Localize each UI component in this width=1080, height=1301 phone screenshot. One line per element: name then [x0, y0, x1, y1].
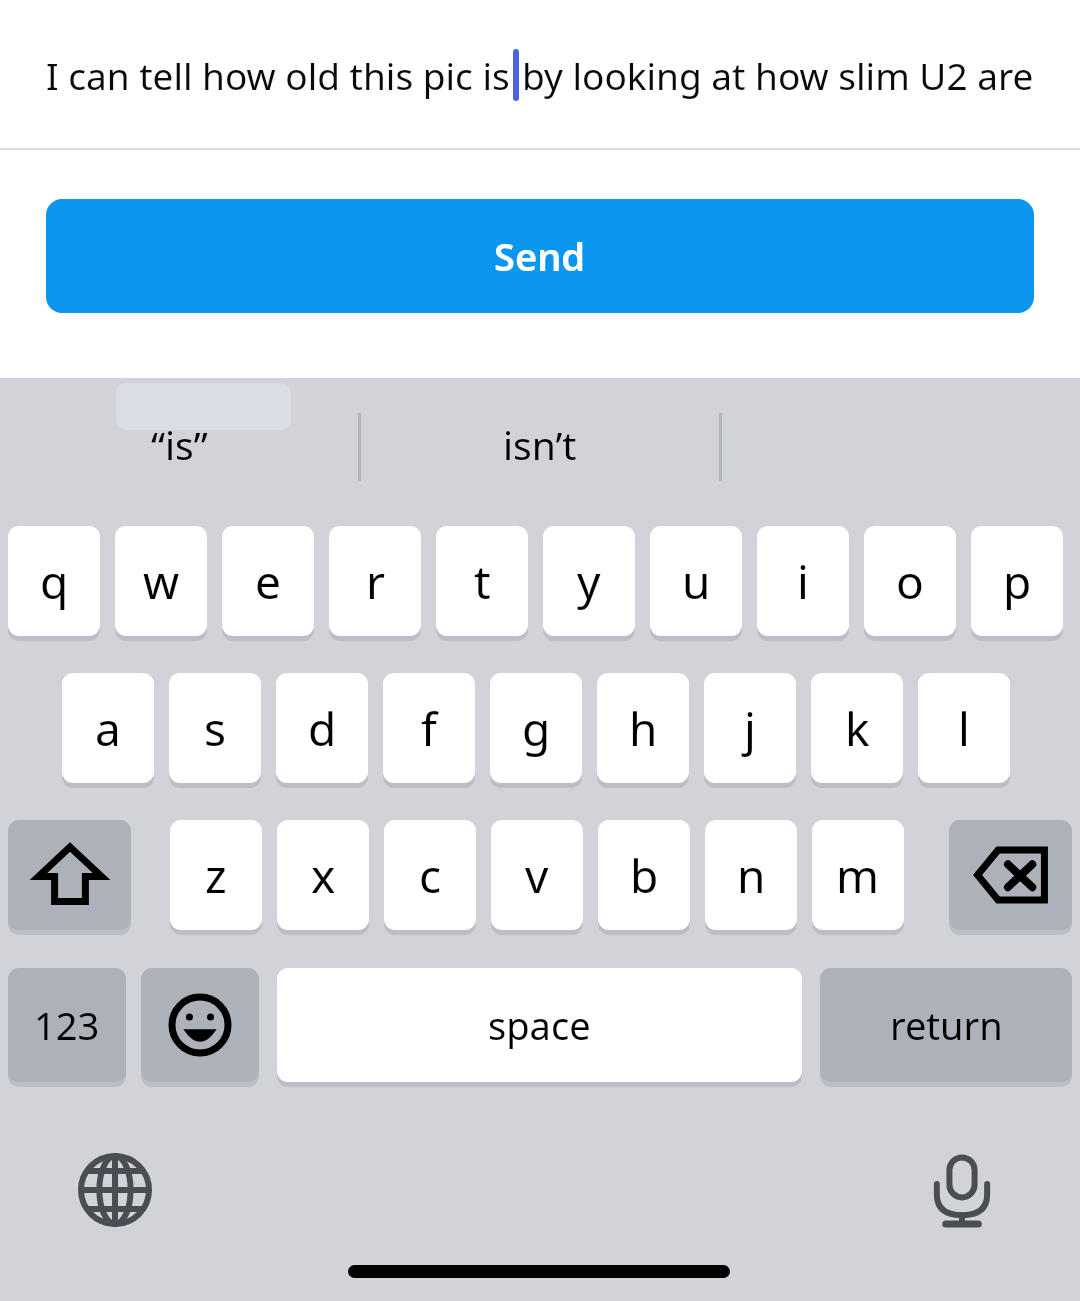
staticText: f — [421, 697, 437, 760]
staticText: v — [525, 844, 549, 907]
staticText: Send — [494, 230, 586, 282]
button[interactable]: r — [329, 526, 421, 636]
staticText: y — [577, 550, 601, 613]
button[interactable]: space — [277, 968, 802, 1082]
button[interactable]: t — [436, 526, 528, 636]
button[interactable]: m — [812, 820, 904, 930]
staticText: o — [896, 550, 924, 613]
staticText: a — [95, 697, 121, 760]
staticText: r — [366, 550, 385, 613]
button[interactable]: “is” — [0, 378, 359, 510]
staticText: c — [419, 844, 442, 907]
button[interactable]: f — [383, 673, 475, 783]
staticText: m — [836, 844, 880, 907]
staticText: d — [308, 697, 337, 760]
button[interactable]: e — [222, 526, 314, 636]
button[interactable]: Dictate — [907, 1135, 1017, 1245]
staticText: z — [205, 844, 227, 907]
button[interactable]: Emoji — [141, 968, 259, 1082]
button[interactable]: a — [62, 673, 154, 783]
staticText: q — [40, 550, 69, 613]
staticText: l — [958, 697, 970, 760]
button[interactable]: n — [705, 820, 797, 930]
staticText: p — [1003, 550, 1032, 613]
button[interactable]: q — [8, 526, 100, 636]
button[interactable]: 123 — [8, 968, 126, 1082]
button[interactable]: i — [757, 526, 849, 636]
staticText: s — [204, 697, 227, 760]
button[interactable]: w — [115, 526, 207, 636]
staticText: “is” — [151, 418, 208, 471]
staticText: e — [255, 550, 281, 613]
staticText: h — [629, 697, 658, 760]
staticText: isn’t — [503, 418, 577, 471]
button[interactable]: s — [169, 673, 261, 783]
staticText: return — [890, 999, 1003, 1051]
button[interactable]: u — [650, 526, 742, 636]
button[interactable]: Shift — [8, 820, 131, 930]
button[interactable]: Backspace — [949, 820, 1072, 930]
staticText: i — [797, 550, 809, 613]
button[interactable]: g — [490, 673, 582, 783]
button[interactable]: Switch keyboard — [60, 1135, 170, 1245]
button[interactable]: o — [864, 526, 956, 636]
staticText: x — [311, 844, 336, 907]
button[interactable]: return — [820, 968, 1072, 1082]
staticText: b — [630, 844, 659, 907]
staticText: w — [143, 550, 180, 613]
button[interactable]: p — [971, 526, 1063, 636]
button[interactable]: d — [276, 673, 368, 783]
staticText: g — [522, 697, 551, 760]
button[interactable]: b — [598, 820, 690, 930]
button[interactable]: x — [277, 820, 369, 930]
staticText: space — [488, 999, 591, 1051]
button[interactable]: y — [543, 526, 635, 636]
staticText: t — [474, 550, 491, 613]
button[interactable]: c — [384, 820, 476, 930]
staticText: I can tell how old this pic is — [46, 50, 510, 100]
staticText: u — [682, 550, 711, 613]
staticText: j — [744, 697, 756, 760]
button[interactable]: isn’t — [359, 378, 720, 510]
button[interactable]: j — [704, 673, 796, 783]
staticText: 123 — [34, 999, 100, 1051]
button[interactable]: l — [918, 673, 1010, 783]
button[interactable]: v — [491, 820, 583, 930]
staticText: n — [737, 844, 766, 907]
button[interactable]: h — [597, 673, 689, 783]
staticText: by looking at how slim U2 are — [522, 50, 1034, 100]
button[interactable]: Send — [46, 199, 1034, 313]
staticText: k — [845, 697, 870, 760]
button[interactable]: k — [811, 673, 903, 783]
button[interactable]: z — [170, 820, 262, 930]
